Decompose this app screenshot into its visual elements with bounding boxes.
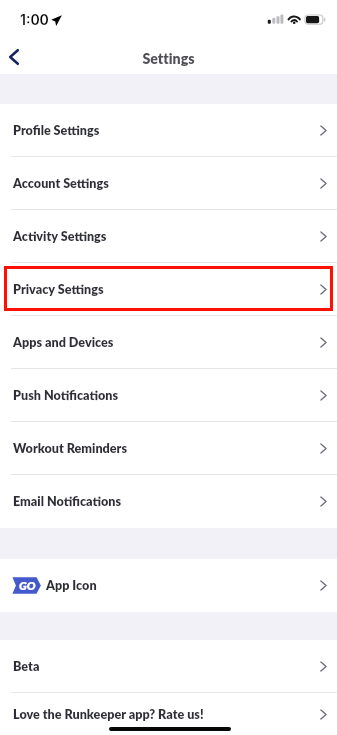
staticText: Workout Reminders <box>13 441 128 456</box>
button[interactable]: Activity Settings <box>0 210 337 263</box>
button[interactable]: Workout Reminders <box>0 422 337 475</box>
staticText: App Icon <box>46 578 97 593</box>
staticText: Love the Runkeeper app? Rate us! <box>13 707 204 722</box>
button[interactable]: Apps and Devices <box>0 316 337 369</box>
staticText: Privacy Settings <box>13 282 104 297</box>
button[interactable]: Email Notifications <box>0 475 337 528</box>
button[interactable]: Push Notifications <box>0 369 337 422</box>
staticText: GO <box>19 579 36 593</box>
button[interactable]: Privacy Settings <box>0 263 337 316</box>
button[interactable]: Beta <box>0 640 337 693</box>
staticText: Settings <box>142 50 195 67</box>
button[interactable]: Profile Settings <box>0 104 337 157</box>
staticText: 1:00 <box>20 11 49 28</box>
staticText: Beta <box>13 659 40 674</box>
staticText: Account Settings <box>13 176 109 191</box>
staticText: Profile Settings <box>13 123 100 138</box>
staticText: Apps and Devices <box>13 335 114 350</box>
button[interactable]: Account Settings <box>0 157 337 210</box>
staticText: Push Notifications <box>13 388 119 403</box>
staticText: Activity Settings <box>13 229 107 244</box>
button[interactable]: GO <box>0 559 337 612</box>
button[interactable]: Back <box>0 40 40 74</box>
button[interactable]: Love the Runkeeper app? Rate us! <box>0 693 337 735</box>
staticText: Email Notifications <box>13 494 122 509</box>
